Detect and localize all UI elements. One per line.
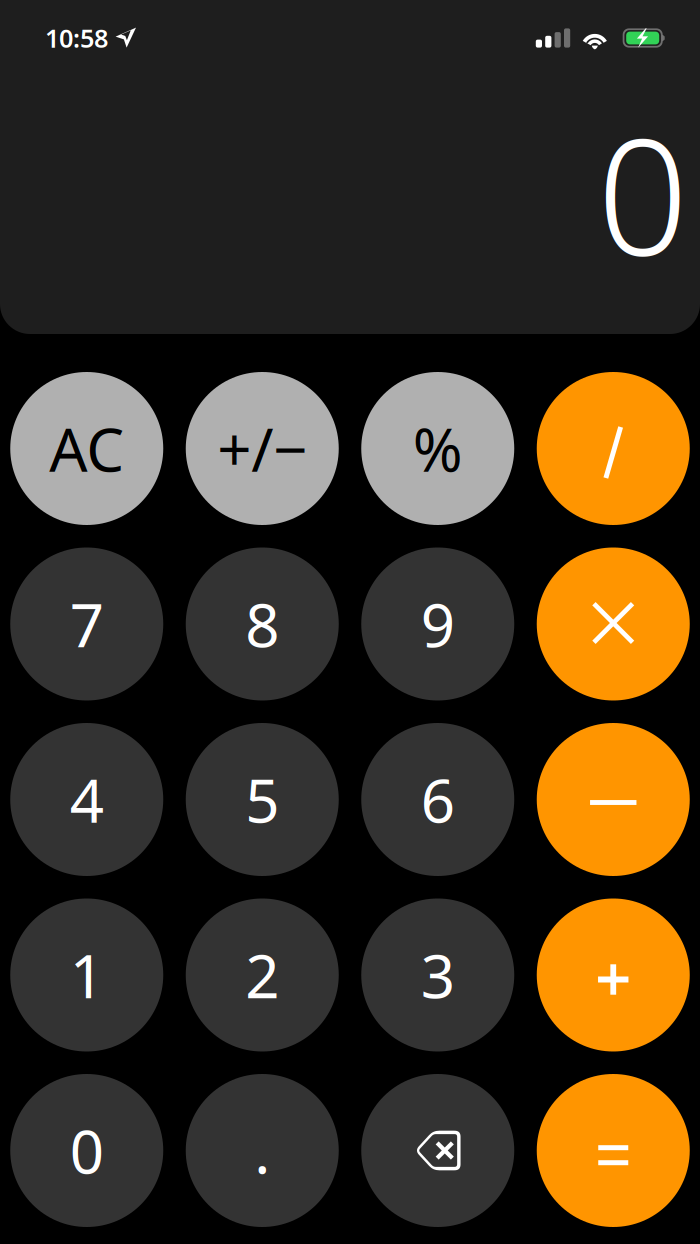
staticText: 3: [421, 935, 455, 1015]
button[interactable]: +/−: [186, 372, 339, 525]
staticText: 2: [245, 935, 279, 1015]
button[interactable]: Divide: [537, 372, 690, 525]
button[interactable]: Equals: [537, 1074, 690, 1227]
staticText: 4: [70, 760, 104, 839]
button[interactable]: 6: [361, 723, 514, 876]
staticText: %: [413, 409, 463, 488]
button[interactable]: 3: [361, 898, 514, 1051]
staticText: +/−: [217, 409, 307, 488]
button[interactable]: 1: [10, 898, 163, 1051]
button[interactable]: 9: [361, 547, 514, 700]
button[interactable]: Subtract: [537, 723, 690, 876]
button[interactable]: 0: [10, 1074, 163, 1227]
button[interactable]: Delete: [361, 1074, 514, 1227]
button[interactable]: 2: [186, 898, 339, 1051]
button[interactable]: 7: [10, 547, 163, 700]
staticText: 8: [245, 584, 279, 664]
button[interactable]: Add: [537, 898, 690, 1051]
staticText: AC: [49, 409, 124, 488]
staticText: 7: [70, 584, 104, 664]
staticText: 6: [421, 760, 455, 839]
button[interactable]: %: [361, 372, 514, 525]
staticText: 9: [421, 584, 455, 664]
button[interactable]: 4: [10, 723, 163, 876]
button[interactable]: 5: [186, 723, 339, 876]
staticText: 0: [597, 86, 688, 299]
staticText: .: [254, 1111, 270, 1190]
staticText: 5: [245, 760, 279, 839]
button[interactable]: AC: [10, 372, 163, 525]
staticText: 10:58: [45, 21, 108, 55]
button[interactable]: .: [186, 1074, 339, 1227]
button[interactable]: Multiply: [537, 547, 690, 700]
staticText: 0: [70, 1111, 104, 1190]
button[interactable]: 8: [186, 547, 339, 700]
staticText: 1: [70, 935, 104, 1015]
